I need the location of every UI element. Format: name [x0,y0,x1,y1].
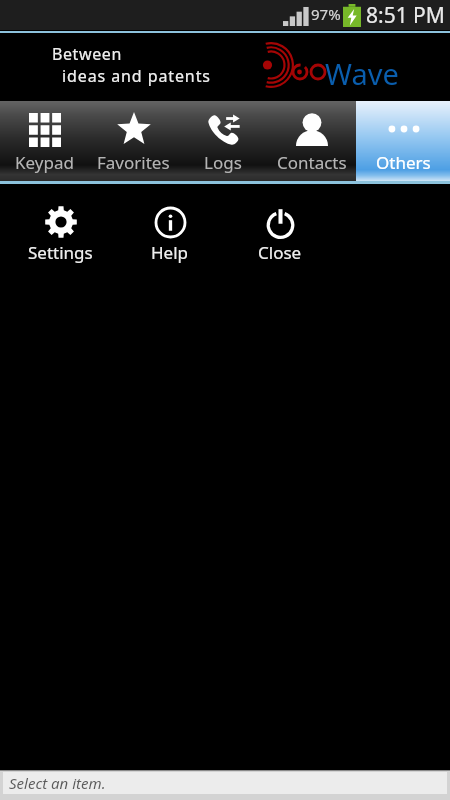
staticText: Keypad [15,151,74,174]
staticText: Favorites [97,151,170,174]
staticText: 97% [311,4,341,24]
staticText: Wave [325,54,399,93]
staticText: Close [258,241,302,264]
button[interactable]: Others [356,101,450,181]
staticText: Contacts [277,151,347,174]
staticText: Logs [204,151,242,174]
staticText: Select an item. [9,773,106,793]
button[interactable]: Settings [5,204,115,266]
button[interactable]: Logs [178,101,267,181]
button[interactable]: Contacts [267,101,356,181]
button[interactable]: Keypad [0,101,89,181]
staticText: ideas and patents [62,65,211,87]
staticText: 8:51 PM [366,1,445,30]
staticText: Help [151,241,189,264]
button[interactable]: Favorites [89,101,178,181]
button[interactable]: Help [115,204,225,266]
staticText: Between [52,43,122,65]
staticText: Settings [28,241,93,264]
button[interactable]: Close [225,204,335,266]
staticText: Others [376,151,431,174]
